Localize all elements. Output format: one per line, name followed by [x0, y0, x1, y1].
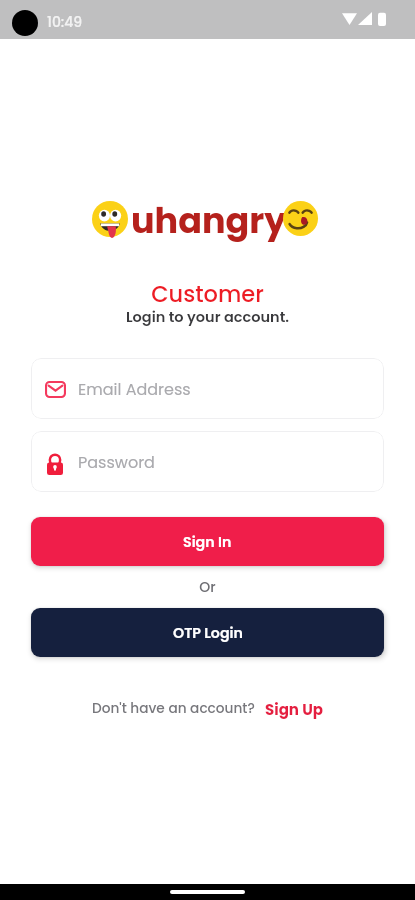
staticText: Login to your account. [0, 307, 415, 327]
staticText: Sign Up [265, 699, 323, 720]
other: Email [45, 381, 66, 398]
staticText: OTP Login [173, 623, 243, 643]
staticText: 10:49 [47, 12, 83, 32]
button[interactable]: Sign In [31, 517, 384, 566]
staticText: Or [0, 577, 415, 597]
button[interactable]: Don't have an account? [92, 699, 255, 718]
staticText: Email Address [78, 378, 191, 400]
button[interactable]: OTP Login [31, 608, 384, 657]
staticText: uhangry [131, 196, 287, 245]
staticText: Don't have an account? [92, 699, 255, 718]
other: Password [47, 454, 63, 475]
staticText: Password [78, 451, 155, 473]
button[interactable]: Password [31, 431, 384, 492]
button[interactable]: Email [31, 358, 384, 419]
button[interactable]: Sign Up [265, 699, 323, 720]
staticText: Sign In [183, 532, 232, 552]
staticText: Customer [0, 278, 415, 309]
